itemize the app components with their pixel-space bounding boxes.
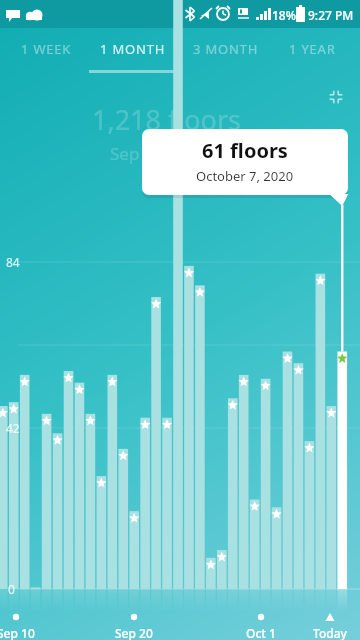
button[interactable]: Collapse chart xyxy=(324,85,350,111)
button[interactable] xyxy=(88,32,180,58)
button[interactable] xyxy=(278,32,354,58)
button[interactable] xyxy=(10,32,86,58)
button[interactable] xyxy=(182,32,274,58)
